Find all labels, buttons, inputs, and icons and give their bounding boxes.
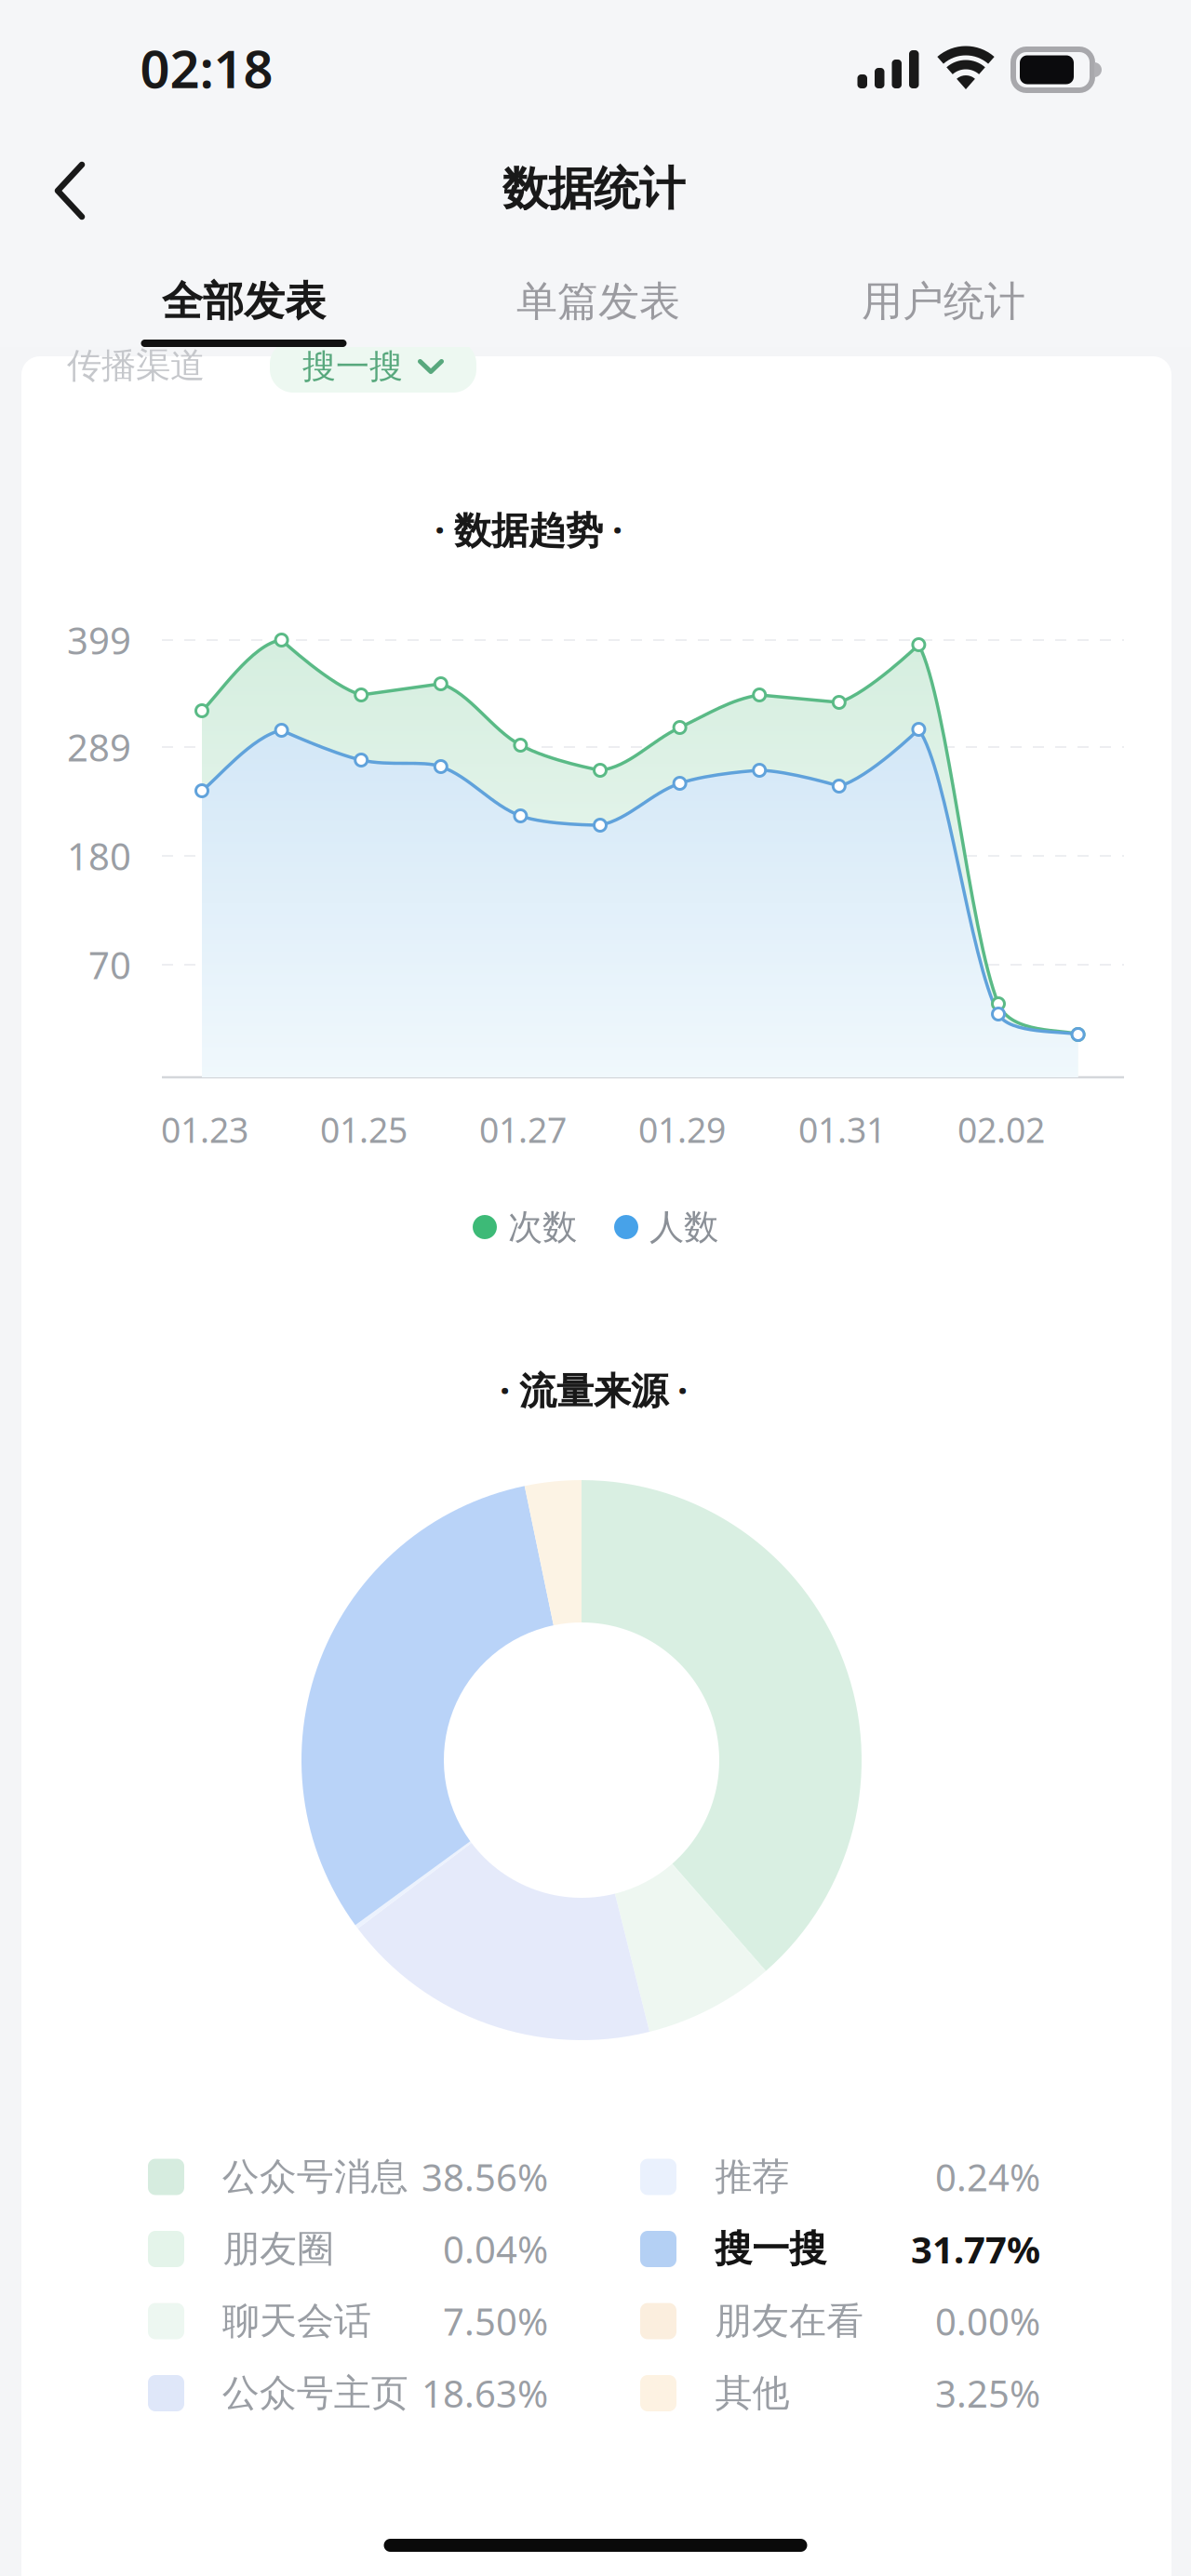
staticText: 公众号主页 bbox=[222, 2370, 408, 2416]
button[interactable]: 公众号主页 bbox=[148, 2371, 548, 2416]
button[interactable]: 推荐 bbox=[640, 2155, 1040, 2199]
staticText: 01.29 bbox=[638, 1106, 726, 1152]
staticText: 单篇发表 bbox=[516, 276, 680, 327]
staticText: 推荐 bbox=[715, 2154, 790, 2200]
staticText: 289 bbox=[67, 722, 131, 772]
staticText: 搜一搜 bbox=[715, 2226, 826, 2272]
staticText: 数据统计 bbox=[502, 161, 685, 217]
staticText: 朋友在看 bbox=[715, 2298, 863, 2344]
staticText: 0.04% bbox=[443, 2224, 548, 2274]
staticText: 全部发表 bbox=[162, 276, 326, 327]
staticText: 聊天会话 bbox=[222, 2298, 371, 2344]
staticText: 朋友圈 bbox=[223, 2226, 334, 2272]
button[interactable]: 搜一搜 bbox=[640, 2227, 1040, 2271]
staticText: 38.56% bbox=[422, 2152, 548, 2202]
staticText: 01.23 bbox=[161, 1106, 248, 1152]
staticText: 18.63% bbox=[422, 2368, 548, 2418]
button[interactable]: 其他 bbox=[640, 2371, 1040, 2416]
button[interactable]: 公众号消息 bbox=[148, 2155, 548, 2199]
staticText: 其他 bbox=[715, 2370, 790, 2416]
button[interactable]: 搜一搜 bbox=[270, 340, 476, 393]
staticText: · 数据趋势 · bbox=[435, 505, 622, 554]
button[interactable]: 朋友圈 bbox=[148, 2227, 548, 2271]
staticText: 0.00% bbox=[935, 2296, 1040, 2346]
button[interactable]: 全部发表 bbox=[153, 263, 335, 340]
staticText: 02:18 bbox=[140, 33, 273, 103]
button[interactable]: 次数 bbox=[473, 1206, 577, 1248]
staticText: 传播渠道 bbox=[67, 344, 205, 387]
button[interactable]: Back bbox=[38, 145, 101, 236]
staticText: 次数 bbox=[508, 1206, 577, 1248]
staticText: 7.50% bbox=[443, 2296, 548, 2346]
staticText: · 流量来源 · bbox=[500, 1365, 688, 1415]
staticText: 70 bbox=[88, 940, 131, 989]
button[interactable]: 单篇发表 bbox=[507, 263, 689, 340]
staticText: 3.25% bbox=[935, 2368, 1040, 2418]
staticText: 01.25 bbox=[320, 1106, 408, 1152]
button[interactable]: 聊天会话 bbox=[148, 2299, 548, 2343]
button[interactable]: 用户统计 bbox=[852, 263, 1035, 340]
staticText: 搜一搜 bbox=[302, 346, 403, 387]
staticText: 01.31 bbox=[798, 1106, 886, 1152]
staticText: 人数 bbox=[649, 1206, 718, 1248]
staticText: 01.27 bbox=[479, 1106, 567, 1152]
staticText: 31.77% bbox=[911, 2224, 1040, 2274]
staticText: 02.02 bbox=[957, 1106, 1045, 1152]
button[interactable]: 人数 bbox=[614, 1206, 718, 1248]
staticText: 0.24% bbox=[935, 2152, 1040, 2202]
staticText: 399 bbox=[67, 615, 131, 665]
button[interactable]: 朋友在看 bbox=[640, 2299, 1040, 2343]
staticText: 180 bbox=[67, 831, 131, 881]
staticText: 用户统计 bbox=[862, 276, 1025, 327]
staticText: 公众号消息 bbox=[222, 2154, 408, 2200]
